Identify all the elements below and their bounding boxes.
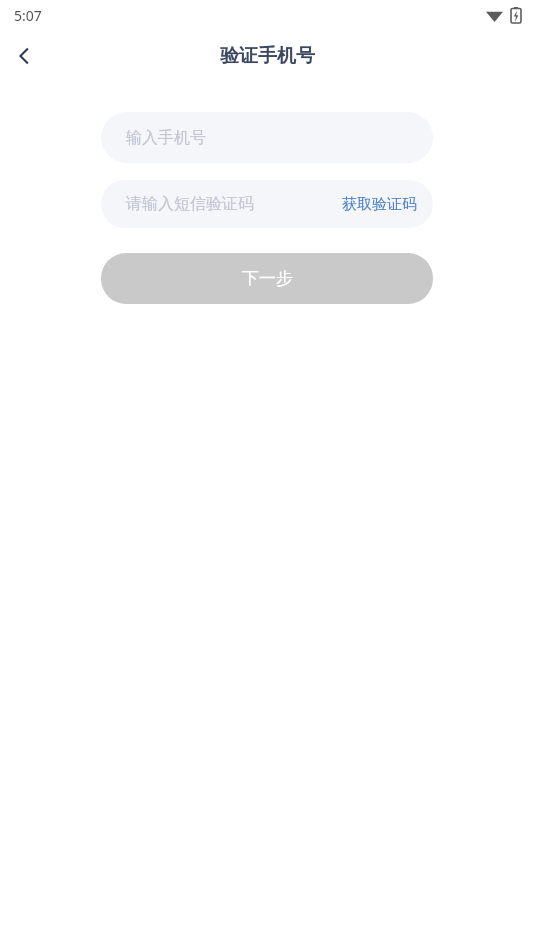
staticText: 验证手机号 [220, 44, 315, 68]
button[interactable]: 获取验证码 [326, 185, 433, 224]
staticText: 获取验证码 [342, 195, 417, 214]
staticText: 请输入短信验证码 [126, 194, 254, 214]
staticText: 5:07 [14, 6, 42, 25]
staticText: 输入手机号 [126, 128, 206, 148]
staticText: 下一步 [242, 268, 293, 289]
button[interactable]: 下一步 [101, 253, 433, 304]
button[interactable]: Back [0, 32, 48, 80]
button[interactable]: 输入手机号 [101, 112, 433, 163]
